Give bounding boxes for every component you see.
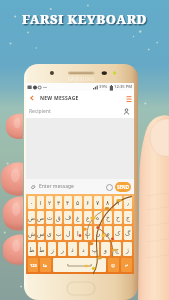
staticText: ل (66, 230, 71, 237)
staticText: SAMSUNG (68, 76, 95, 82)
button[interactable]: ج (124, 211, 132, 224)
button[interactable]: چ (112, 242, 121, 256)
staticText: ۵ (76, 199, 80, 206)
staticText: س (37, 230, 44, 237)
button[interactable]: Space (53, 258, 106, 272)
staticText: پ (92, 246, 98, 253)
staticText: ب (56, 230, 62, 237)
button[interactable]: ص (37, 211, 44, 224)
staticText: ه (96, 214, 100, 221)
button[interactable]: ۱ (37, 196, 44, 209)
button[interactable]: ۸ (104, 196, 112, 209)
button[interactable]: ب (55, 226, 62, 240)
button[interactable]: Emoji (105, 183, 113, 191)
button[interactable]: ت (84, 226, 92, 240)
staticText: فا (43, 263, 48, 268)
button[interactable]: ل (64, 226, 72, 240)
staticText: ر (61, 246, 64, 253)
button[interactable]: ه (94, 211, 102, 224)
button[interactable]: ذ (68, 242, 77, 256)
button[interactable]: ن (94, 226, 102, 240)
staticText: 12:35 PM (114, 84, 133, 90)
staticText: ق (56, 214, 61, 221)
staticText: ج (126, 214, 130, 221)
staticText: ن (96, 230, 101, 237)
staticText: ↵ (125, 263, 129, 268)
button[interactable]: ژ (123, 242, 132, 256)
button[interactable]: ح (114, 211, 122, 224)
button[interactable]: ۷ (94, 196, 102, 209)
button[interactable]: ۹ (114, 196, 122, 209)
button[interactable]: ظ (28, 242, 36, 256)
button[interactable]: ف (64, 211, 72, 224)
button[interactable]: Attach (29, 183, 37, 191)
button[interactable]: ی (46, 226, 53, 240)
staticText: NEW MESSAGE (40, 95, 79, 102)
button[interactable]: ۵ (74, 196, 82, 209)
staticText: ٫ (127, 199, 129, 206)
button[interactable]: فا (40, 258, 51, 272)
staticText: چ (115, 246, 119, 253)
button[interactable]: ٫ (124, 196, 132, 209)
staticText: FARSI KEYBOARD (24, 12, 150, 29)
staticText: ط (39, 246, 45, 253)
staticText: گ (125, 230, 131, 237)
staticText: ژ (126, 246, 129, 253)
button[interactable]: ۳ (55, 196, 62, 209)
staticText: ۴ (66, 199, 70, 206)
staticText: غ (76, 214, 80, 221)
staticText: ۹ (116, 199, 120, 206)
staticText: ۰ (30, 199, 34, 206)
staticText: خ (106, 214, 110, 221)
button[interactable]: ۲ (46, 196, 53, 209)
button[interactable]: ک (114, 226, 122, 240)
staticText: ۸ (106, 199, 110, 206)
button[interactable]: ط (38, 242, 46, 256)
staticText: ز (51, 246, 54, 253)
staticText: د (82, 246, 85, 253)
staticText: FARSI KEYBOARD (23, 13, 149, 30)
staticText: 39% (99, 84, 108, 90)
button[interactable]: خ (104, 211, 112, 224)
button[interactable]: 123 (28, 258, 38, 272)
staticText: و (104, 246, 107, 253)
button[interactable]: Add contact (122, 107, 131, 116)
button[interactable]: Back (26, 91, 38, 105)
button[interactable]: SEND (115, 182, 131, 192)
staticText: ض (28, 214, 35, 221)
button[interactable]: ۴ (64, 196, 72, 209)
staticText: ی (47, 230, 52, 237)
staticText: ف (65, 214, 72, 221)
button[interactable]: ع (84, 211, 92, 224)
staticText: ص (37, 214, 44, 221)
button[interactable]: ق (55, 211, 62, 224)
button[interactable]: ↵ (121, 258, 132, 272)
staticText: ☺ (111, 263, 116, 268)
button[interactable]: گ (124, 226, 132, 240)
button[interactable]: More options (123, 91, 134, 105)
staticText: ۳ (57, 199, 61, 206)
button[interactable]: ش (28, 226, 35, 240)
staticText: SEND (117, 184, 129, 190)
staticText: FARSI KEYBOARD (23, 12, 149, 29)
staticText: 123 (30, 263, 37, 268)
button[interactable]: ض (28, 211, 35, 224)
button[interactable]: پ (90, 242, 99, 256)
button[interactable]: ۶ (84, 196, 92, 209)
button[interactable]: ۰ (28, 196, 35, 209)
button[interactable]: ا (74, 226, 82, 240)
button[interactable]: ر (58, 242, 66, 256)
button[interactable]: ☺ (108, 258, 119, 272)
button[interactable]: د (79, 242, 88, 256)
staticText: ۶ (86, 199, 90, 206)
button[interactable]: م (104, 226, 112, 240)
button[interactable]: و (101, 242, 110, 256)
staticText: ع (86, 214, 90, 221)
button[interactable]: ث (46, 211, 53, 224)
button[interactable]: ز (48, 242, 56, 256)
staticText: Enter message (39, 183, 74, 190)
staticText: ۷ (96, 199, 100, 206)
button[interactable]: غ (74, 211, 82, 224)
staticText: Recipient (29, 108, 51, 115)
button[interactable]: س (37, 226, 44, 240)
